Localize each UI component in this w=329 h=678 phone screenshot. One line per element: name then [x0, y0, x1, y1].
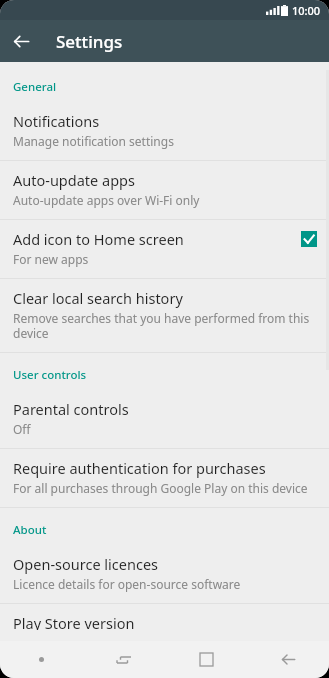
staticText: Clear local search history	[13, 288, 183, 308]
button[interactable]: Recents	[83, 641, 165, 678]
staticText: For new apps	[13, 251, 89, 267]
staticText: Off	[13, 421, 31, 437]
button[interactable]: Clear local search history	[0, 279, 329, 352]
staticText: About	[13, 522, 47, 538]
button[interactable]: Back	[0, 20, 42, 62]
staticText: General	[13, 79, 57, 95]
button[interactable]: Auto-update apps	[0, 161, 329, 219]
staticText: User controls	[13, 367, 87, 383]
staticText: Licence details for open-source software	[13, 576, 241, 592]
button[interactable]: Require authentication for purchases	[0, 449, 329, 507]
staticText: Settings	[56, 30, 123, 53]
staticText: Auto-update apps over Wi-Fi only	[13, 192, 200, 208]
staticText: Require authentication for purchases	[13, 458, 266, 478]
staticText: 10:00	[292, 3, 321, 18]
staticText: Add icon to Home screen	[13, 229, 184, 249]
staticText: Auto-update apps	[13, 170, 135, 190]
staticText: Manage notification settings	[13, 133, 174, 149]
staticText: Open-source licences	[13, 554, 158, 574]
staticText: Notifications	[13, 111, 100, 131]
button[interactable]: Open-source licences	[0, 545, 329, 603]
staticText: Remove searches that you have performed …	[13, 310, 317, 341]
button[interactable]: Add icon to Home screen	[0, 220, 329, 278]
staticText: Parental controls	[13, 399, 129, 419]
staticText: For all purchases through Google Play on…	[13, 480, 308, 496]
button[interactable]: Menu	[0, 641, 83, 678]
button[interactable]: Add icon to Home screen checkbox	[301, 231, 317, 247]
button[interactable]: Play Store version	[0, 604, 329, 641]
button[interactable]: Home	[165, 641, 247, 678]
button[interactable]: Back	[247, 641, 329, 678]
staticText: Play Store version	[13, 613, 135, 630]
button[interactable]: Notifications	[0, 102, 329, 160]
button[interactable]: Parental controls	[0, 390, 329, 448]
